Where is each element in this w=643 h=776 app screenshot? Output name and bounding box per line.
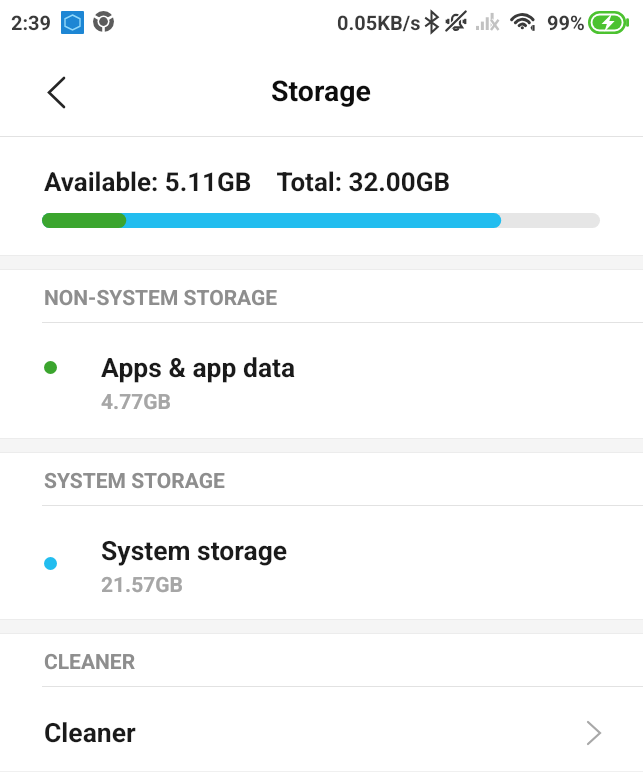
- staticText: 2:39: [11, 11, 52, 34]
- staticText: 21.57GB: [101, 573, 184, 598]
- staticText: 0.05KB/s: [337, 11, 421, 34]
- staticText: Cleaner: [44, 717, 136, 748]
- staticText: NON-SYSTEM STORAGE: [44, 286, 278, 311]
- button[interactable]: Apps & app data: [0, 323, 643, 438]
- staticText: CLEANER: [44, 650, 136, 675]
- staticText: Storage: [271, 75, 371, 108]
- button[interactable]: Back: [14, 45, 96, 136]
- staticText: 99%: [547, 11, 585, 34]
- staticText: Available: 5.11GB Total: 32.00GB: [44, 167, 451, 197]
- staticText: SYSTEM STORAGE: [44, 469, 225, 494]
- button[interactable]: Cleaner: [0, 687, 643, 772]
- staticText: System storage: [101, 535, 288, 566]
- staticText: Apps & app data: [101, 352, 296, 383]
- button[interactable]: System storage: [0, 506, 643, 619]
- staticText: 4.77GB: [101, 390, 171, 415]
